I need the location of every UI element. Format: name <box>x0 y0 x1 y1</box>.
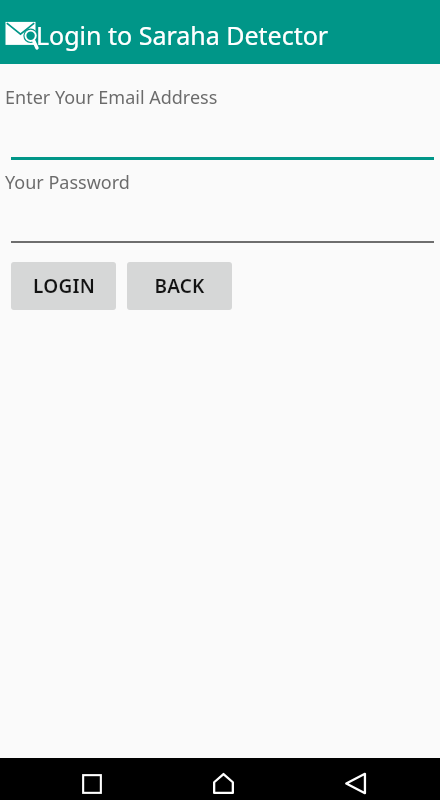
staticText: Your Password <box>5 170 130 195</box>
staticText: Enter Your Email Address <box>5 85 218 110</box>
staticText: BACK <box>154 273 205 299</box>
button[interactable]: BACK <box>127 262 232 310</box>
button[interactable]: Enter Your Email Address <box>11 78 434 160</box>
staticText: LOGIN <box>33 273 95 299</box>
button[interactable]: Recent apps <box>71 763 112 800</box>
staticText: Login to Saraha Detector <box>36 18 329 52</box>
button[interactable]: Your Password <box>11 163 434 243</box>
button[interactable]: Back <box>335 763 376 800</box>
button[interactable]: LOGIN <box>11 262 116 310</box>
button[interactable]: Home <box>203 763 244 800</box>
